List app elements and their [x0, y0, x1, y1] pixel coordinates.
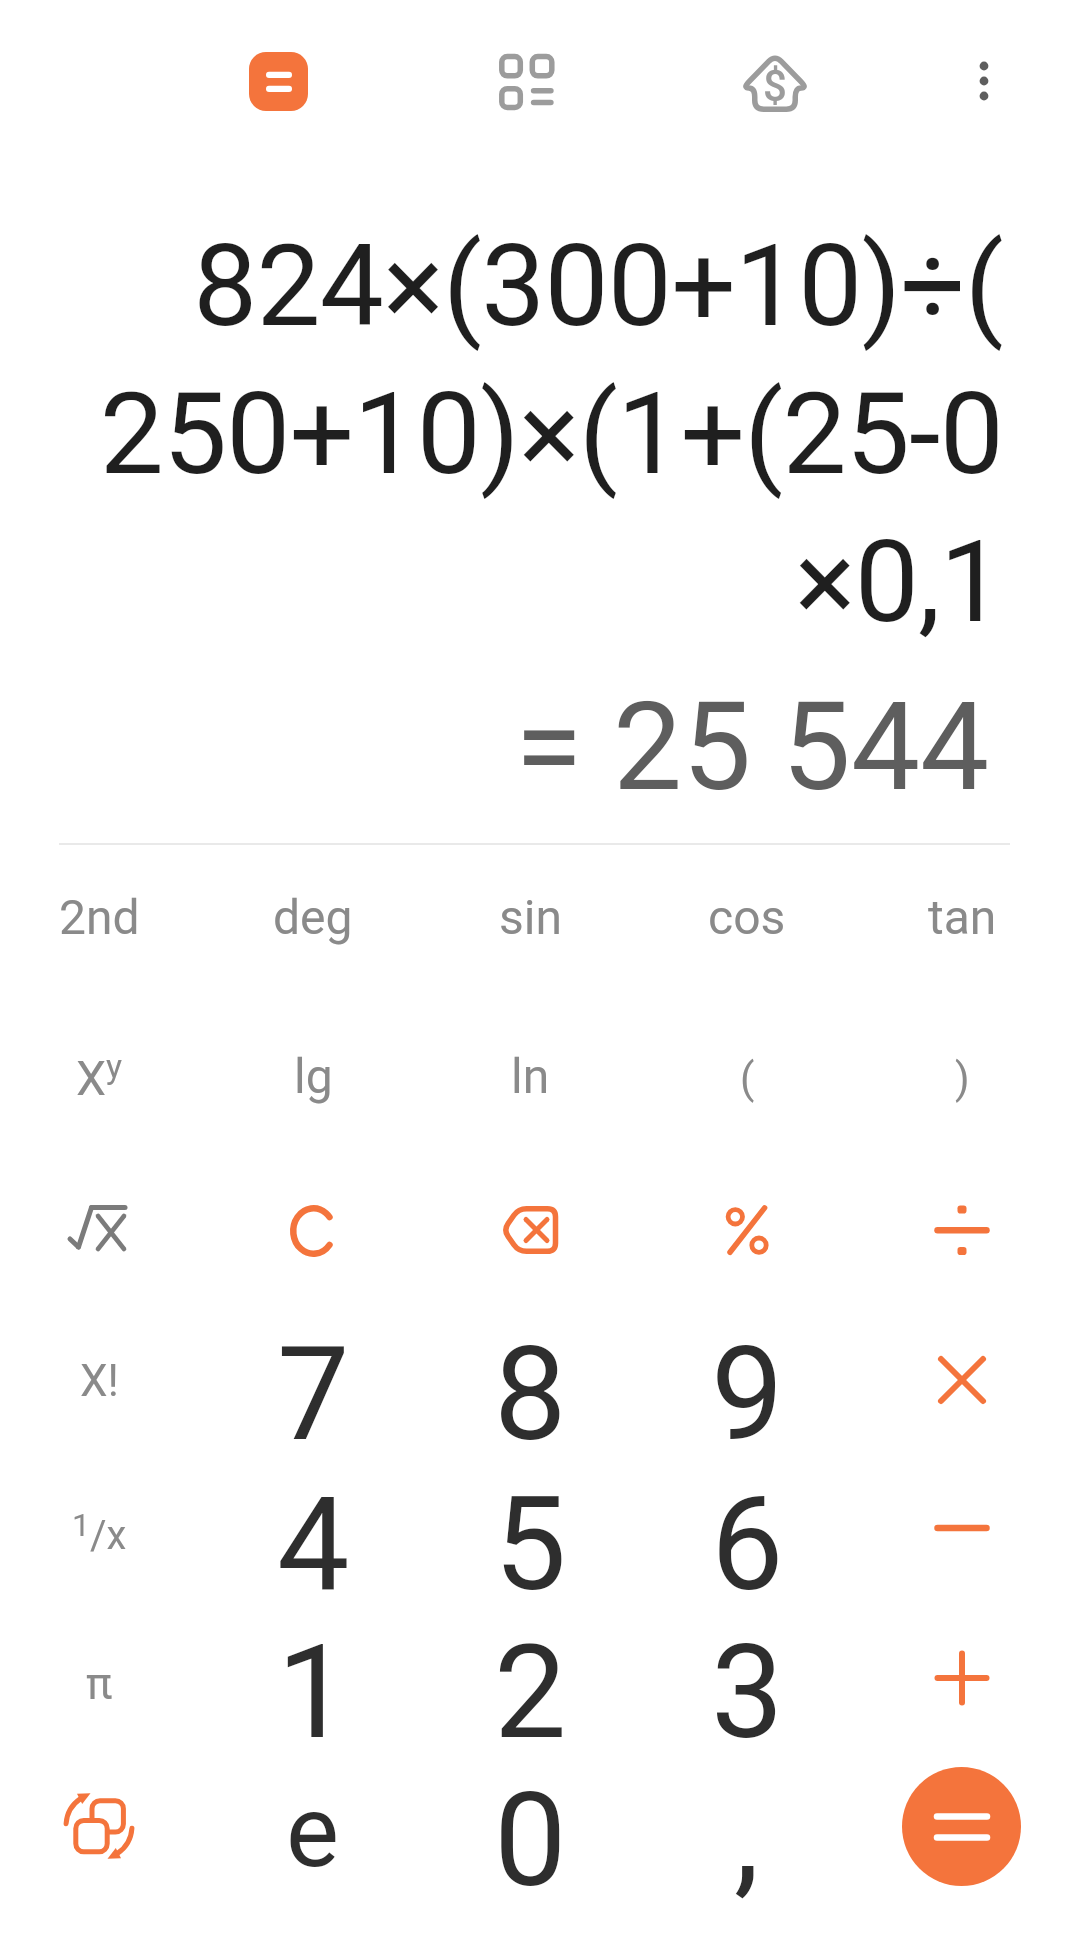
staticText: ,: [734, 1760, 760, 1910]
staticText: 2: [494, 1617, 567, 1767]
staticText: deg: [273, 889, 353, 945]
staticText: 824×(300+10)÷( 250+10)×(1+(25-0 ×0,1: [99, 219, 1003, 649]
button[interactable]: $: [735, 42, 815, 122]
button[interactable]: [424, 1155, 638, 1305]
staticText: 6: [711, 1469, 784, 1619]
button[interactable]: ln: [423, 1001, 637, 1151]
staticText: 1: [277, 1617, 350, 1767]
staticText: 3: [711, 1617, 784, 1767]
staticText: 5: [494, 1469, 567, 1619]
button[interactable]: [0, 1751, 206, 1901]
staticText: Xy: [76, 1046, 123, 1107]
staticText: 8: [494, 1319, 567, 1469]
staticText: = 25 544: [515, 675, 990, 819]
staticText: (: [740, 1054, 755, 1103]
button[interactable]: [855, 1603, 1069, 1753]
staticText: 9: [711, 1319, 784, 1469]
button[interactable]: sin: [423, 842, 637, 992]
button[interactable]: [206, 1156, 420, 1306]
button[interactable]: ,: [640, 1760, 854, 1910]
button[interactable]: tan: [855, 842, 1069, 992]
button[interactable]: [855, 1155, 1069, 1305]
staticText: 2nd: [59, 889, 140, 945]
button[interactable]: deg: [206, 842, 420, 992]
button[interactable]: [855, 1305, 1069, 1455]
staticText: lg: [294, 1048, 333, 1104]
staticText: π: [86, 1658, 113, 1710]
staticText: ln: [511, 1048, 550, 1104]
button[interactable]: [855, 1453, 1069, 1603]
button[interactable]: 2nd: [0, 842, 206, 992]
button[interactable]: [249, 52, 308, 111]
staticText: 0: [494, 1765, 567, 1915]
button[interactable]: [960, 48, 1008, 112]
staticText: 7: [277, 1319, 350, 1469]
button[interactable]: [902, 1767, 1021, 1886]
button[interactable]: Xy: [0, 1001, 206, 1151]
button[interactable]: 3: [640, 1617, 854, 1767]
button[interactable]: 2: [423, 1617, 637, 1767]
staticText: 4: [277, 1469, 350, 1619]
staticText: X!: [80, 1355, 119, 1407]
button[interactable]: ): [855, 1003, 1069, 1153]
staticText: $: [763, 62, 787, 111]
button[interactable]: [487, 42, 567, 122]
button[interactable]: 8: [423, 1319, 637, 1469]
staticText: tan: [928, 889, 997, 945]
button[interactable]: (: [640, 1003, 854, 1153]
button[interactable]: 9: [640, 1319, 854, 1469]
staticText: e: [286, 1773, 340, 1890]
button[interactable]: [0, 1155, 206, 1305]
button[interactable]: 1: [206, 1617, 420, 1767]
button[interactable]: [640, 1156, 854, 1306]
button[interactable]: 0: [423, 1765, 637, 1915]
button[interactable]: lg: [206, 1001, 420, 1151]
button[interactable]: X!: [0, 1306, 206, 1456]
button[interactable]: 4: [206, 1469, 420, 1619]
button[interactable]: 6: [640, 1469, 854, 1619]
staticText: sin: [499, 889, 562, 945]
button[interactable]: e: [206, 1756, 420, 1906]
staticText: ): [955, 1054, 970, 1103]
button[interactable]: π: [0, 1609, 206, 1759]
staticText: 1/x: [72, 1506, 127, 1559]
button[interactable]: 7: [206, 1319, 420, 1469]
button[interactable]: cos: [640, 842, 854, 992]
button[interactable]: 1/x: [0, 1457, 206, 1607]
staticText: cos: [708, 889, 786, 945]
button[interactable]: 5: [423, 1469, 637, 1619]
